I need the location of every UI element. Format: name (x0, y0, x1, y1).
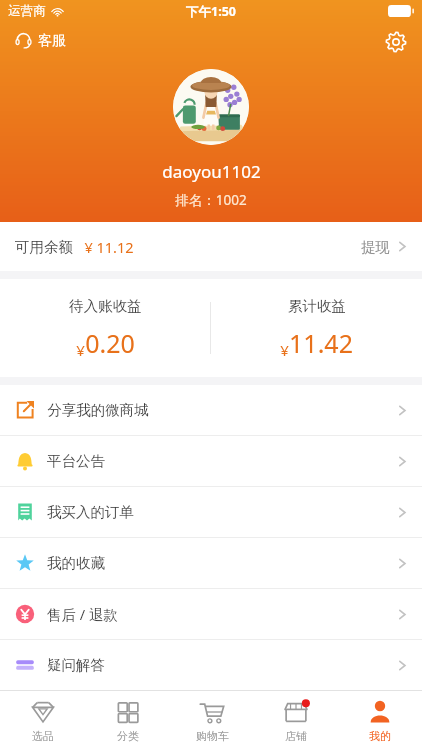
staticText: 我买入的订单 (47, 503, 134, 521)
staticText: 0.20 (85, 326, 135, 360)
button[interactable]: 选品 (0, 691, 85, 750)
button[interactable] (173, 69, 249, 145)
button[interactable]: 我的 (338, 691, 422, 750)
staticText: 我的收藏 (47, 554, 105, 572)
button[interactable]: 分类 (85, 691, 170, 750)
button[interactable]: 售后 / 退款 (0, 589, 422, 639)
staticText: ¥ (280, 340, 289, 360)
staticText: ¥ (76, 340, 85, 360)
staticText: 分享我的微商城 (47, 401, 149, 419)
staticText: 下午1:50 (186, 3, 236, 20)
button[interactable]: 平台公告 (0, 436, 422, 486)
staticText: 店铺 (285, 729, 307, 743)
staticText: 选品 (32, 729, 54, 743)
staticText: 11.42 (289, 326, 353, 360)
staticText: 我的 (369, 729, 391, 743)
staticText: 分类 (117, 729, 139, 743)
staticText: 提现 (361, 238, 390, 256)
staticText: 购物车 (196, 729, 229, 743)
button[interactable]: 我买入的订单 (0, 487, 422, 537)
staticText: 客服 (38, 32, 66, 50)
button[interactable]: 累计收益 (211, 289, 422, 368)
staticText: 售后 / 退款 (47, 604, 118, 624)
button[interactable]: 店铺 (254, 691, 338, 750)
button[interactable]: 我的收藏 (0, 538, 422, 588)
staticText: 运营商 (8, 3, 46, 19)
staticText: 排名：1002 (175, 191, 247, 209)
button[interactable]: 购物车 (170, 691, 254, 750)
button[interactable]: 待入账收益 (0, 289, 210, 368)
staticText: daoyou1102 (162, 160, 261, 183)
staticText: 待入账收益 (69, 297, 142, 315)
button[interactable]: 分享我的微商城 (0, 385, 422, 435)
staticText: 累计收益 (288, 297, 346, 315)
button[interactable]: 可用余额 (0, 222, 422, 271)
button[interactable]: 疑问解答 (0, 640, 422, 690)
staticText: 可用余额 (15, 238, 73, 256)
staticText: ¥ 11.12 (84, 237, 134, 257)
staticText: 平台公告 (47, 452, 105, 470)
staticText: 疑问解答 (47, 656, 105, 674)
button[interactable]: Settings (382, 28, 410, 56)
button[interactable]: 客服 (10, 28, 70, 53)
